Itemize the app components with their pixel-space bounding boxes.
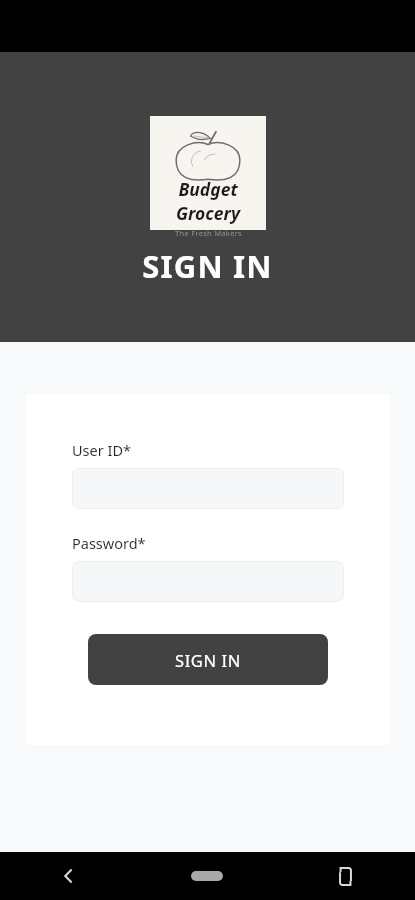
staticText: SIGN IN bbox=[142, 245, 273, 287]
button[interactable]: Back bbox=[0, 852, 138, 900]
button[interactable]: SIGN IN bbox=[88, 634, 328, 685]
staticText: The Fresh Makers bbox=[175, 228, 242, 238]
button[interactable]: Rotate screen bbox=[276, 852, 415, 900]
staticText: User ID* bbox=[72, 440, 131, 460]
staticText: SIGN IN bbox=[175, 649, 241, 671]
staticText: Password* bbox=[72, 533, 146, 553]
button[interactable]: Home bbox=[138, 852, 276, 900]
staticText: Budget Grocery bbox=[150, 177, 266, 225]
